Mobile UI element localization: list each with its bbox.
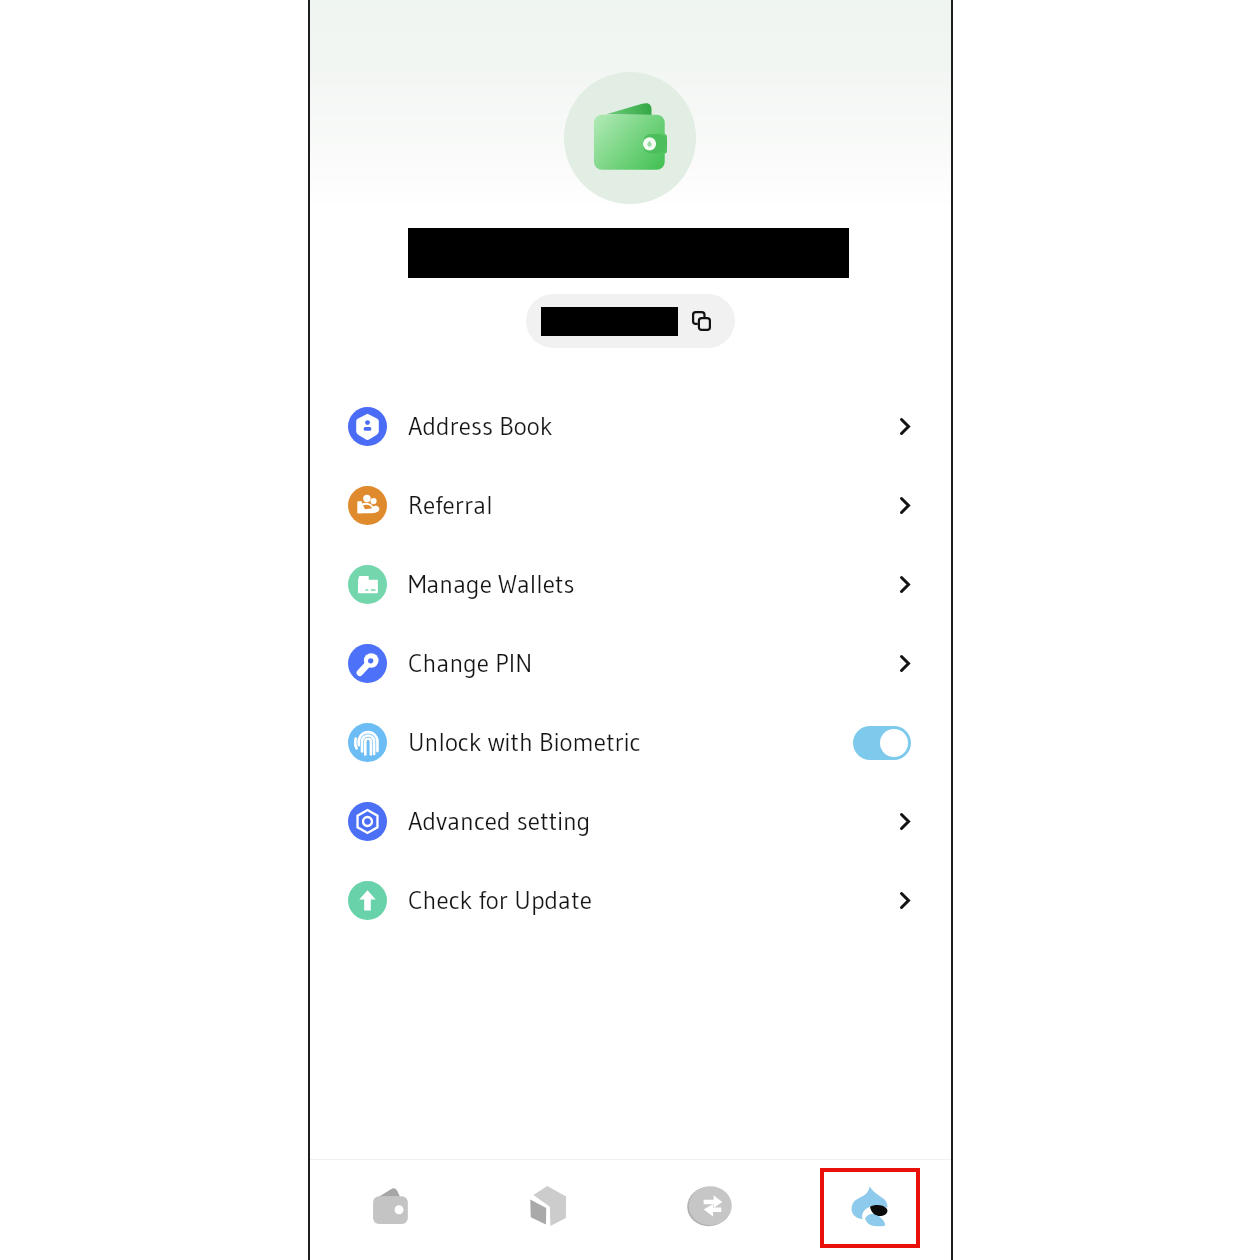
button[interactable]: Check for Update <box>309 861 951 940</box>
staticText: Unlock with Biometric <box>408 727 641 758</box>
staticText: Referral <box>408 490 493 521</box>
staticText: Change PIN <box>408 648 533 679</box>
button[interactable]: Wallet <box>309 1160 469 1260</box>
staticText: Check for Update <box>408 885 592 916</box>
button[interactable]: Unlock with Biometric <box>309 703 951 782</box>
button[interactable]: Referral <box>309 466 951 545</box>
button[interactable]: Advanced setting <box>309 782 951 861</box>
button[interactable]: Discover <box>824 1172 916 1244</box>
staticText: Advanced setting <box>408 806 591 837</box>
button[interactable]: Swap <box>629 1160 790 1260</box>
button[interactable]: Change PIN <box>309 624 951 703</box>
button[interactable]: Address Book <box>309 387 951 466</box>
staticText: Manage Wallets <box>408 569 575 600</box>
button[interactable]: Toggle unlock with biometric <box>853 726 911 760</box>
button[interactable]: Copy wallet address <box>526 294 735 348</box>
button[interactable]: Assets <box>469 1160 629 1260</box>
button[interactable]: Manage Wallets <box>309 545 951 624</box>
staticText: Address Book <box>408 411 553 442</box>
